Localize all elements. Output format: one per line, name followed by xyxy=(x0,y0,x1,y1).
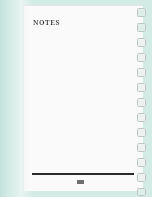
button[interactable]: Index tab 12 xyxy=(136,172,147,183)
button[interactable]: Index tab 4 xyxy=(136,52,147,63)
button[interactable]: Index tab 6 xyxy=(136,82,147,93)
button[interactable] xyxy=(76,179,85,185)
button[interactable]: Index tab 3 xyxy=(136,37,147,48)
button[interactable]: Index tab 2 xyxy=(136,22,147,33)
button[interactable]: Index tab 8 xyxy=(136,112,147,123)
button[interactable]: Index tab 7 xyxy=(136,97,147,108)
button[interactable]: Index tab 9 xyxy=(136,127,147,138)
button[interactable]: Index tab 11 xyxy=(136,157,147,168)
button[interactable]: Index tab 10 xyxy=(136,142,147,153)
button[interactable]: NOTES xyxy=(31,17,63,29)
button[interactable]: Index tab 1 xyxy=(136,7,147,18)
button[interactable]: Index tab 13 xyxy=(136,187,147,197)
staticText: NOTES xyxy=(33,18,61,28)
button[interactable]: Index tab 5 xyxy=(136,67,147,78)
button[interactable]: NOTES xyxy=(24,5,143,191)
